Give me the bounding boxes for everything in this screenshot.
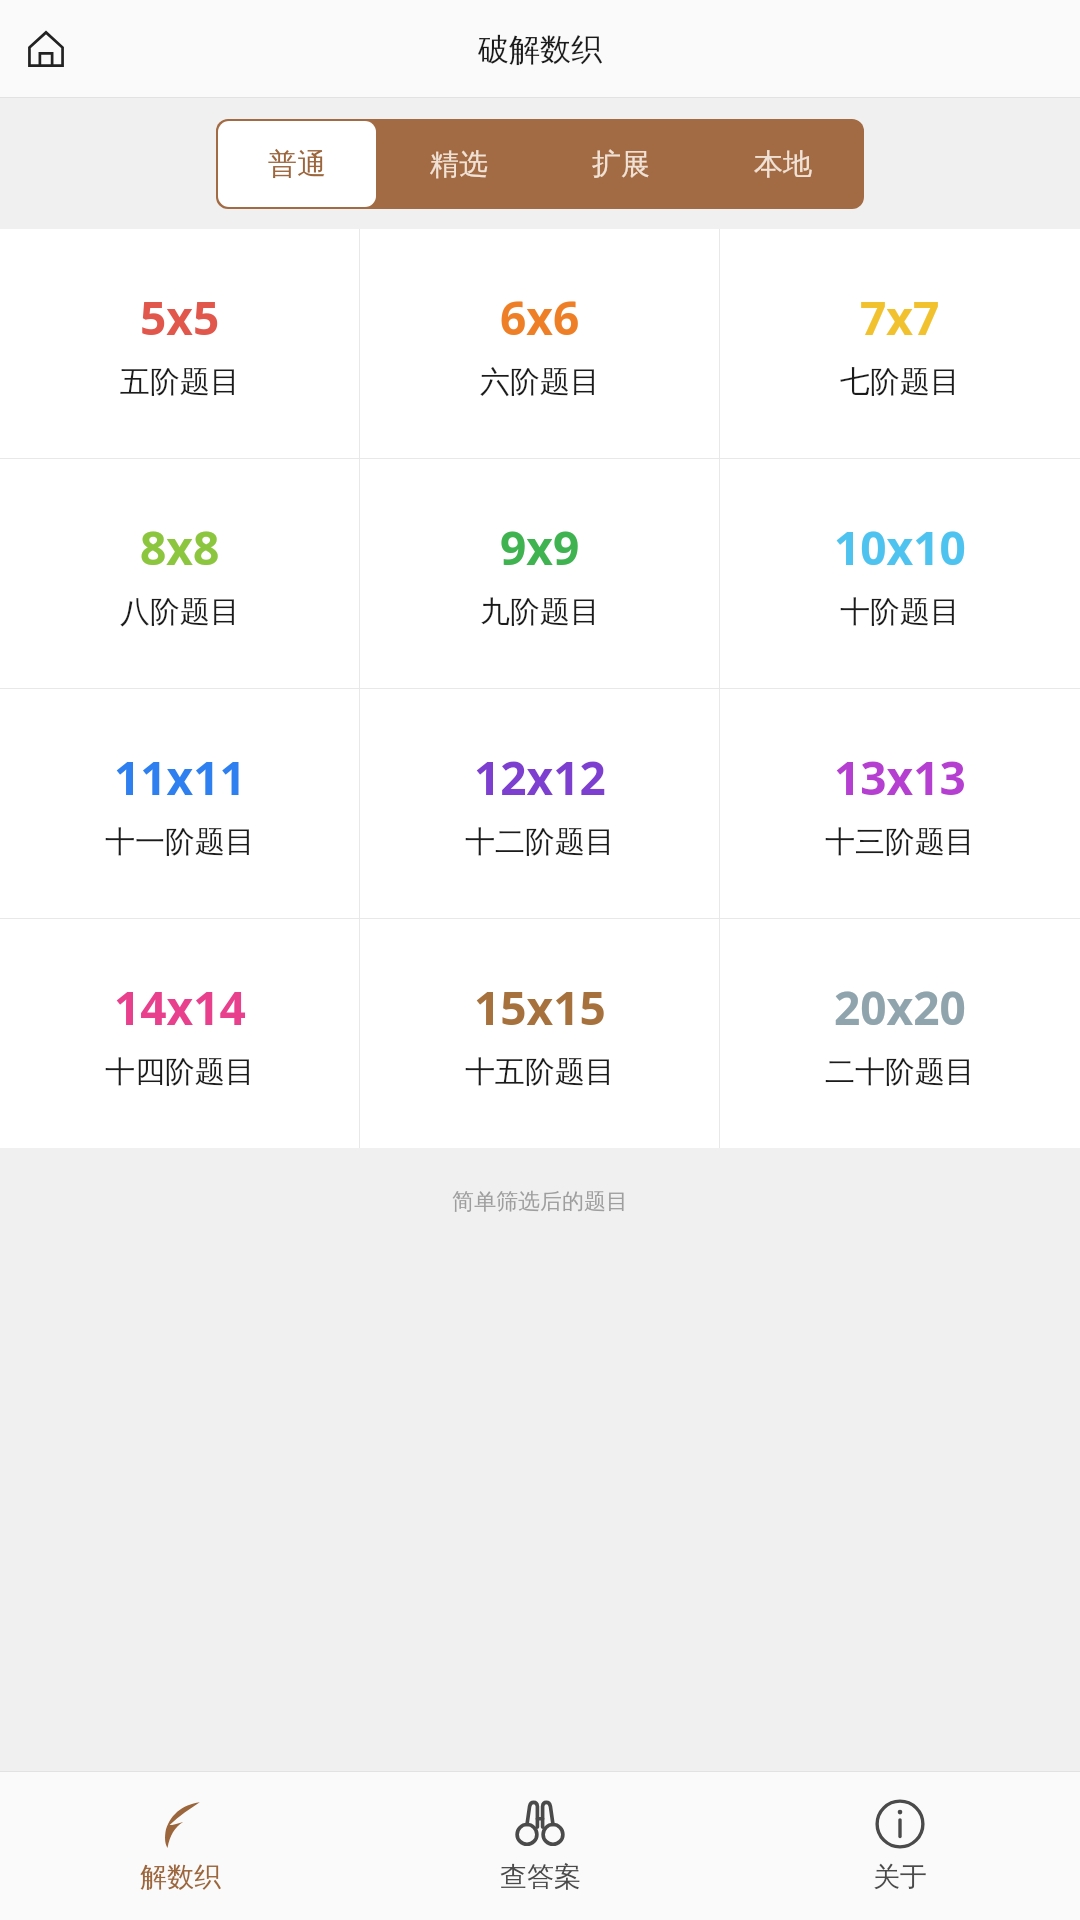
staticText: 14x14 — [114, 976, 246, 1039]
staticText: 6x6 — [500, 286, 580, 349]
button[interactable]: 10x10 — [720, 459, 1080, 688]
button[interactable]: 13x13 — [720, 689, 1080, 918]
staticText: 20x20 — [834, 976, 966, 1039]
staticText: 八阶题目 — [120, 593, 240, 631]
staticText: 十五阶题目 — [465, 1053, 615, 1091]
button[interactable]: 普通 — [218, 121, 376, 207]
staticText: 十阶题目 — [840, 593, 960, 631]
staticText: 10x10 — [834, 516, 966, 579]
staticText: 十四阶题目 — [105, 1053, 255, 1091]
button[interactable]: 查答案 — [360, 1772, 720, 1920]
staticText: 关于 — [873, 1860, 927, 1894]
staticText: 本地 — [754, 146, 812, 183]
staticText: 9x9 — [500, 516, 580, 579]
staticText: 7x7 — [860, 286, 940, 349]
staticText: 六阶题目 — [480, 363, 600, 401]
button[interactable]: 关于 — [720, 1772, 1080, 1920]
staticText: 15x15 — [474, 976, 606, 1039]
button[interactable]: 5x5 — [0, 229, 360, 458]
staticText: 11x11 — [114, 746, 246, 809]
staticText: 普通 — [268, 146, 326, 183]
button[interactable]: 20x20 — [720, 919, 1080, 1148]
staticText: 二十阶题目 — [825, 1053, 975, 1091]
button[interactable]: 6x6 — [360, 229, 720, 458]
staticText: 简单筛选后的题目 — [0, 1188, 1080, 1216]
staticText: 十二阶题目 — [465, 823, 615, 861]
staticText: 扩展 — [592, 146, 650, 183]
staticText: 五阶题目 — [120, 363, 240, 401]
staticText: 13x13 — [834, 746, 966, 809]
button[interactable]: 15x15 — [360, 919, 720, 1148]
button[interactable]: 11x11 — [0, 689, 360, 918]
staticText: 12x12 — [474, 746, 606, 809]
button[interactable]: 扩展 — [540, 119, 702, 209]
staticText: 十三阶题目 — [825, 823, 975, 861]
staticText: 解数织 — [140, 1860, 221, 1894]
button[interactable]: 解数织 — [0, 1772, 360, 1920]
staticText: 精选 — [430, 146, 488, 183]
staticText: 九阶题目 — [480, 593, 600, 631]
staticText: 七阶题目 — [840, 363, 960, 401]
staticText: 十一阶题目 — [105, 823, 255, 861]
button[interactable]: 14x14 — [0, 919, 360, 1148]
staticText: 8x8 — [140, 516, 220, 579]
staticText: 查答案 — [500, 1860, 581, 1894]
button[interactable]: 8x8 — [0, 459, 360, 688]
button[interactable]: 7x7 — [720, 229, 1080, 458]
button[interactable]: 精选 — [378, 119, 540, 209]
button[interactable]: 12x12 — [360, 689, 720, 918]
button[interactable]: 本地 — [702, 119, 864, 209]
button[interactable]: 9x9 — [360, 459, 720, 688]
button[interactable]: Home — [18, 21, 74, 77]
staticText: 5x5 — [140, 286, 220, 349]
staticText: 破解数织 — [478, 30, 602, 69]
